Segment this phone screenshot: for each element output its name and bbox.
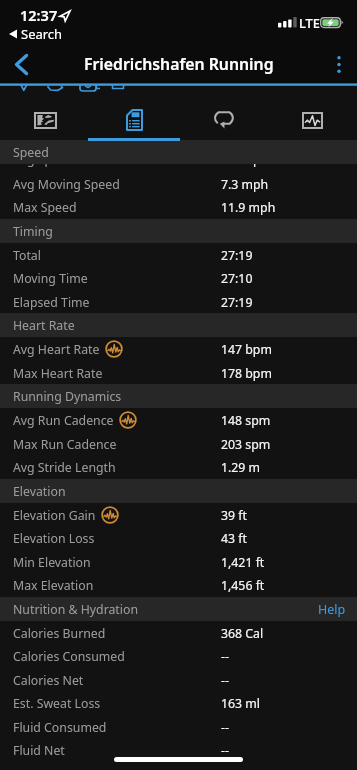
staticText: Help: [318, 601, 346, 617]
button[interactable]: More options: [321, 44, 357, 84]
staticText: --: [221, 719, 229, 736]
button[interactable]: Map: [0, 100, 90, 140]
button[interactable]: Back: [0, 44, 42, 84]
staticText: Avg Stride Length: [13, 459, 116, 476]
staticText: Max Run Cadence: [13, 436, 117, 453]
staticText: 178 bpm: [221, 365, 272, 382]
staticText: Calories Net: [13, 672, 84, 689]
staticText: Elapsed Time: [13, 294, 90, 311]
button[interactable]: Elevation Loss: [0, 526, 357, 550]
staticText: --: [221, 742, 229, 759]
staticText: Moving Time: [13, 270, 88, 287]
staticText: 43 ft: [221, 530, 247, 547]
staticText: Fluid Consumed: [13, 719, 107, 736]
staticText: Avg Moving Speed: [13, 176, 120, 193]
staticText: Timing: [13, 223, 53, 240]
button[interactable]: Details: [90, 100, 179, 140]
button[interactable]: Avg Stride Length: [0, 455, 357, 479]
button[interactable]: Laps: [179, 100, 268, 140]
staticText: Max Speed: [13, 199, 77, 216]
staticText: Fluid Net: [13, 742, 65, 759]
staticText: Est. Sweat Loss: [13, 695, 101, 712]
button[interactable]: Help: [307, 597, 357, 621]
button[interactable]: Max Speed: [0, 195, 357, 219]
button[interactable]: Est. Sweat Loss: [0, 691, 357, 715]
staticText: Elevation Gain: [13, 507, 96, 524]
staticText: Nutrition & Hydration: [13, 601, 139, 618]
button[interactable]: Avg Speed: [0, 147, 357, 171]
staticText: Calories Consumed: [13, 648, 125, 665]
staticText: Avg Run Cadence: [13, 412, 114, 429]
staticText: 27:10: [221, 270, 253, 287]
staticText: Elevation: [13, 483, 66, 500]
button[interactable]: Min Elevation: [0, 550, 357, 574]
staticText: Max Elevation: [13, 577, 94, 594]
staticText: 368 Cal: [221, 625, 264, 642]
button[interactable]: Avg Moving Speed: [0, 172, 357, 196]
button[interactable]: Charts: [268, 100, 357, 140]
staticText: --: [221, 672, 229, 689]
staticText: Running Dynamics: [13, 388, 122, 405]
staticText: Calories Burned: [13, 625, 106, 642]
button[interactable]: Fluid Net: [0, 738, 357, 762]
button[interactable]: Avg Heart Rate: [0, 337, 357, 361]
button[interactable]: Max Elevation: [0, 573, 357, 597]
staticText: --: [221, 648, 229, 665]
button[interactable]: Elevation Gain: [0, 503, 357, 527]
staticText: Avg Speed: [13, 151, 74, 168]
staticText: Max Heart Rate: [13, 365, 103, 382]
staticText: 1.29 m: [221, 459, 261, 476]
staticText: Elevation Loss: [13, 530, 95, 547]
staticText: 39 ft: [221, 507, 247, 524]
staticText: Avg Heart Rate: [13, 341, 100, 358]
staticText: 27:19: [221, 247, 253, 264]
button[interactable]: Search: [7, 24, 65, 44]
button[interactable]: Calories Burned: [0, 621, 357, 645]
button[interactable]: Max Run Cadence: [0, 432, 357, 456]
staticText: LTE: [299, 14, 320, 31]
staticText: 163 ml: [221, 695, 260, 712]
staticText: Search: [21, 25, 63, 43]
button[interactable]: Max Heart Rate: [0, 361, 357, 385]
staticText: 7.3 mph: [221, 176, 269, 193]
button[interactable]: Avg Run Cadence: [0, 408, 357, 432]
staticText: Total: [13, 247, 41, 264]
staticText: Min Elevation: [13, 554, 91, 571]
staticText: 7.4 mph: [221, 151, 269, 168]
staticText: 12:37: [20, 5, 58, 25]
button[interactable]: Elapsed Time: [0, 290, 357, 314]
button[interactable]: Total: [0, 243, 357, 267]
button[interactable]: Calories Consumed: [0, 644, 357, 668]
staticText: 1,421 ft: [221, 554, 265, 571]
staticText: 1,456 ft: [221, 577, 265, 594]
staticText: Friedrichshafen Running: [84, 53, 274, 75]
staticText: 147 bpm: [221, 341, 272, 358]
staticText: Heart Rate: [13, 317, 75, 334]
button[interactable]: Fluid Consumed: [0, 715, 357, 739]
staticText: 148 spm: [221, 412, 271, 429]
staticText: 11.9 mph: [221, 199, 276, 216]
staticText: 27:19: [221, 294, 253, 311]
button[interactable]: Calories Net: [0, 668, 357, 692]
button[interactable]: Moving Time: [0, 266, 357, 290]
staticText: Speed: [13, 144, 49, 161]
staticText: 203 spm: [221, 436, 271, 453]
